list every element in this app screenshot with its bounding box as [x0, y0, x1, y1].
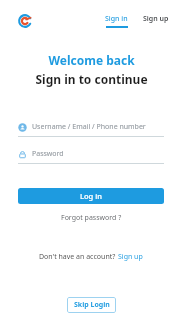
staticText: Sign in — [105, 14, 128, 24]
staticText: Sign up — [143, 14, 169, 24]
staticText: Username / Email / Phone number — [32, 122, 146, 132]
staticText: Welcome back — [48, 52, 135, 68]
button[interactable]: Skip Login — [67, 297, 116, 313]
button[interactable]: App logo — [18, 14, 32, 28]
staticText: Don't have an account? — [39, 252, 118, 262]
button[interactable]: Sign up — [118, 252, 143, 262]
button[interactable]: Forgot password ? — [55, 211, 128, 225]
button[interactable]: Sign up — [140, 16, 172, 26]
button[interactable]: Sign in — [102, 14, 131, 28]
staticText: Log in — [80, 191, 102, 201]
button[interactable]: Username / Email / Phone number — [18, 120, 164, 137]
button[interactable]: Password — [18, 147, 164, 164]
staticText: Sign up — [118, 252, 143, 262]
staticText: Skip Login — [74, 300, 110, 310]
staticText: Sign in to continue — [35, 71, 148, 87]
staticText: Forgot password ? — [61, 213, 122, 223]
staticText: Password — [32, 149, 64, 159]
button[interactable]: Log in — [18, 188, 164, 204]
